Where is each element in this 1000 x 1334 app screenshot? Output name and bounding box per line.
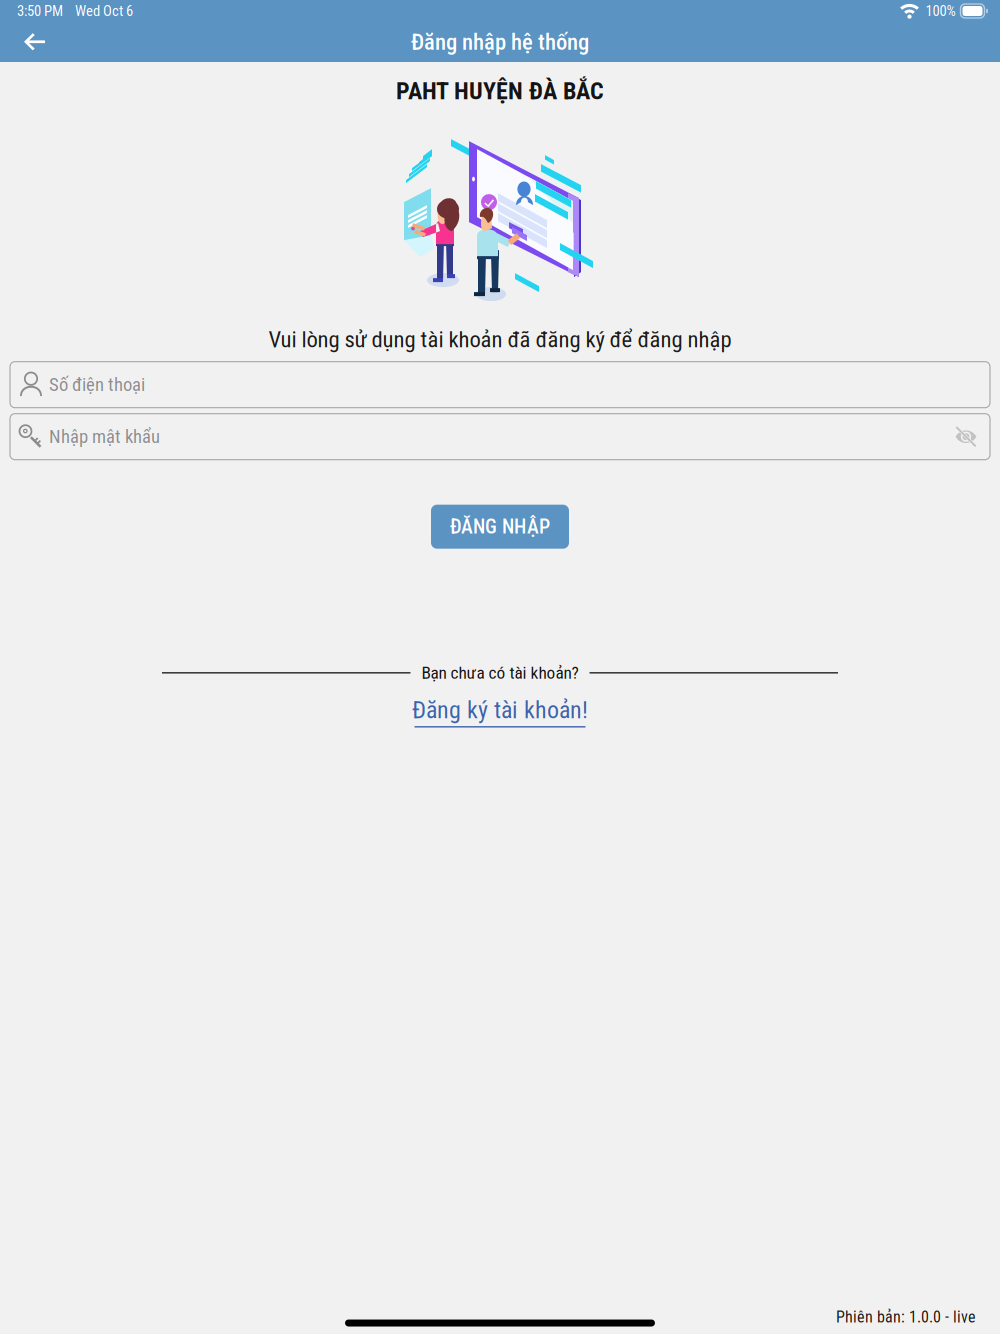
staticText: Vui lòng sử dụng tài khoản đã đăng ký để… [268, 326, 731, 353]
button[interactable]: ĐĂNG NHẬP [431, 505, 569, 549]
staticText: ĐĂNG NHẬP [450, 515, 550, 538]
button[interactable]: Back [0, 22, 69, 62]
staticText: 3:50 PM [17, 2, 63, 20]
staticText: PAHT HUYỆN ĐÀ BẮC [396, 77, 604, 105]
staticText: Bạn chưa có tài khoản? [421, 663, 578, 683]
staticText: Nhập mật khẩu [49, 426, 160, 448]
staticText: 100% [925, 2, 955, 20]
staticText: Số điện thoại [49, 374, 145, 396]
staticText: Wed Oct 6 [75, 2, 133, 20]
staticText: Đăng nhập hệ thống [411, 29, 589, 55]
button[interactable]: Đăng ký tài khoản! [412, 696, 588, 727]
staticText: Phiên bản: 1.0.0 - live [836, 1308, 976, 1326]
staticText: Đăng ký tài khoản! [412, 696, 588, 724]
